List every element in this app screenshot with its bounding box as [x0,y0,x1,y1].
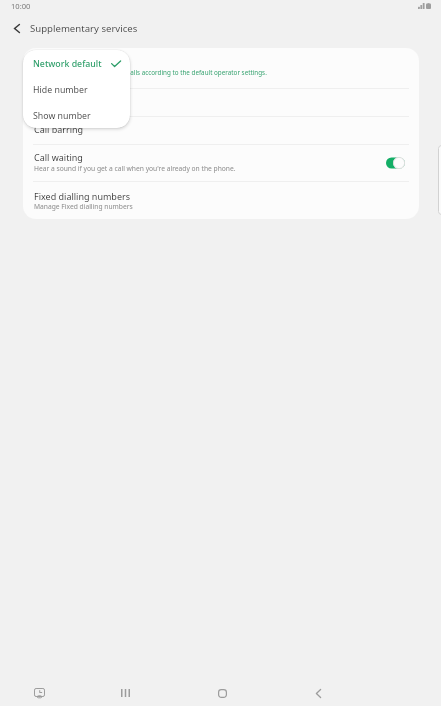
staticText: Call barring [34,123,84,135]
button[interactable]: Screen timeout [21,675,57,706]
button[interactable]: Call forwarding [23,89,419,116]
staticText: Fixed dialling numbers [34,190,131,202]
button[interactable]: Fixed dialling numbers [23,182,419,219]
staticText: Show my caller ID for outgoing calls acc… [34,68,267,77]
staticText: Call waiting [34,151,83,163]
button[interactable]: Network default [23,51,130,77]
button[interactable]: Call waiting on [386,157,405,169]
button[interactable]: Back [300,675,336,706]
staticText: Show caller ID [34,54,94,66]
staticText: Show number [33,110,91,122]
button[interactable]: Call barring [23,117,419,144]
staticText: Network default [33,58,102,70]
button[interactable]: Show caller ID [23,48,419,88]
staticText: Supplementary services [30,22,138,35]
staticText: Hide number [33,84,88,96]
staticText: Manage Fixed dialling numbers [34,202,133,211]
staticText: Hear a sound if you get a call when you'… [34,164,236,173]
staticText: 10:00 [11,1,31,11]
button[interactable]: Show number [23,103,130,128]
button[interactable]: Hide number [23,77,130,103]
button[interactable]: Recent apps [107,675,143,706]
button[interactable]: Home [204,675,240,706]
button[interactable]: Call waiting [23,145,419,181]
button[interactable]: Navigate up [5,17,29,39]
